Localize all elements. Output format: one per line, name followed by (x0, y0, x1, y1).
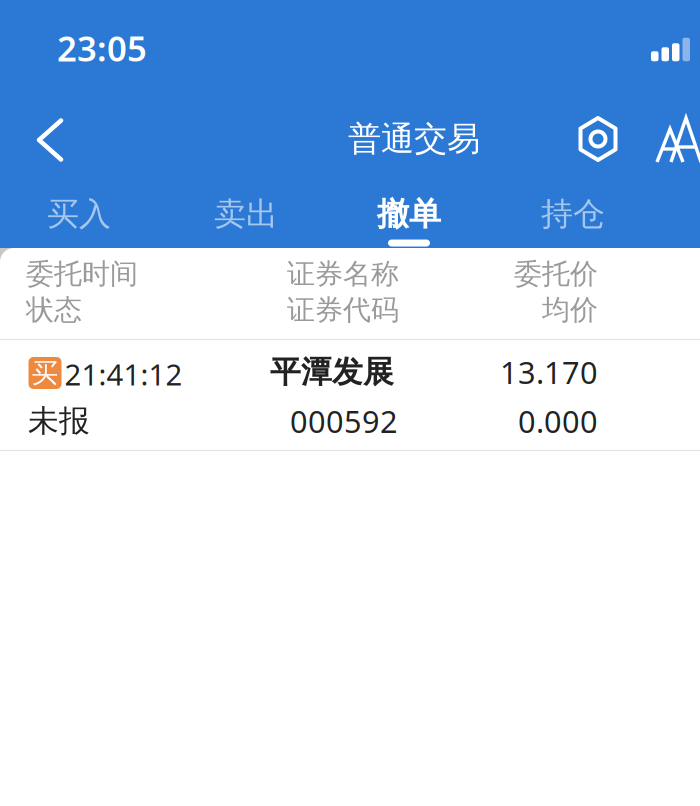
staticText: 000592 (290, 401, 398, 441)
button[interactable]: 撤单 (363, 186, 455, 242)
staticText: 买 (31, 357, 58, 389)
button[interactable]: 持仓 (527, 186, 619, 242)
staticText: 普通交易 (348, 118, 480, 159)
staticText: 未报 (28, 402, 90, 440)
staticText: 证券代码 (287, 293, 399, 327)
button[interactable]: 卖出 (200, 186, 292, 242)
staticText: 均价 (542, 293, 598, 327)
staticText: 平潭发展 (270, 353, 394, 391)
button[interactable]: 买入 (33, 186, 125, 242)
staticText: 23:05 (57, 25, 147, 71)
button[interactable]: Back (27, 108, 73, 171)
staticText: 买入 (47, 194, 111, 234)
staticText: 撤单 (377, 194, 441, 234)
staticText: 状态 (26, 293, 82, 327)
staticText: 持仓 (541, 194, 605, 234)
staticText: 卖出 (214, 194, 278, 234)
staticText: 0.000 (518, 401, 598, 441)
button[interactable]: 委托 平潭发展 000592 (0, 340, 700, 450)
button[interactable]: Settings (574, 112, 621, 166)
staticText: 13.170 (500, 352, 598, 392)
staticText: 21:41:12 (64, 354, 182, 393)
button[interactable]: Text size (657, 118, 700, 162)
staticText: 证券名称 (287, 257, 399, 291)
staticText: 委托时间 (26, 257, 138, 291)
staticText: 委托价 (514, 257, 598, 291)
